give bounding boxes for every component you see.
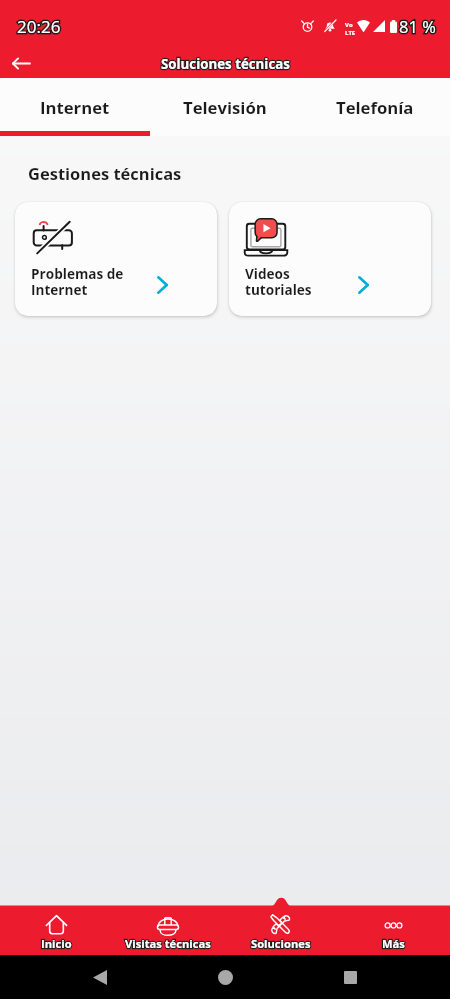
staticText: Visitas técnicas xyxy=(125,936,211,951)
staticText: 81 % xyxy=(399,15,436,37)
staticText: Inicio xyxy=(41,936,72,951)
button[interactable]: Videos tutoriales xyxy=(229,202,431,316)
staticText: Más xyxy=(382,936,405,951)
button[interactable]: Visitas técnicas xyxy=(112,906,224,955)
button[interactable]: Back xyxy=(84,961,116,993)
button[interactable]: Internet xyxy=(0,78,150,136)
staticText: Videos tutoriales xyxy=(245,264,312,299)
button[interactable]: Back xyxy=(4,46,38,80)
staticText: Visitas técnicas xyxy=(125,936,211,951)
button[interactable]: Más xyxy=(337,906,450,955)
staticText: 20:26 xyxy=(17,15,61,38)
staticText: LTE xyxy=(345,29,356,37)
staticText: 20:26 xyxy=(17,15,61,38)
staticText: 81 % xyxy=(399,15,436,37)
button[interactable]: Recents xyxy=(334,961,366,993)
staticText: Gestiones técnicas xyxy=(28,162,182,184)
staticText: Más xyxy=(382,936,405,951)
button[interactable]: Telefonía xyxy=(300,78,450,136)
staticText: Televisión xyxy=(183,96,267,119)
button[interactable]: Televisión xyxy=(150,78,300,136)
button[interactable]: Problemas de Internet xyxy=(15,202,217,316)
staticText: Internet xyxy=(40,96,110,119)
staticText: Inicio xyxy=(41,936,72,951)
staticText: Problemas de Internet xyxy=(31,264,124,299)
button[interactable]: Soluciones xyxy=(224,906,337,955)
button[interactable]: Home xyxy=(209,961,241,993)
button[interactable]: Inicio xyxy=(0,906,112,955)
staticText: Soluciones xyxy=(251,936,311,951)
staticText: Soluciones técnicas xyxy=(161,55,290,73)
staticText: Soluciones técnicas xyxy=(161,55,290,73)
staticText: Soluciones xyxy=(251,936,311,951)
staticText: Telefonía xyxy=(336,96,414,119)
staticText: Vo xyxy=(345,21,353,29)
